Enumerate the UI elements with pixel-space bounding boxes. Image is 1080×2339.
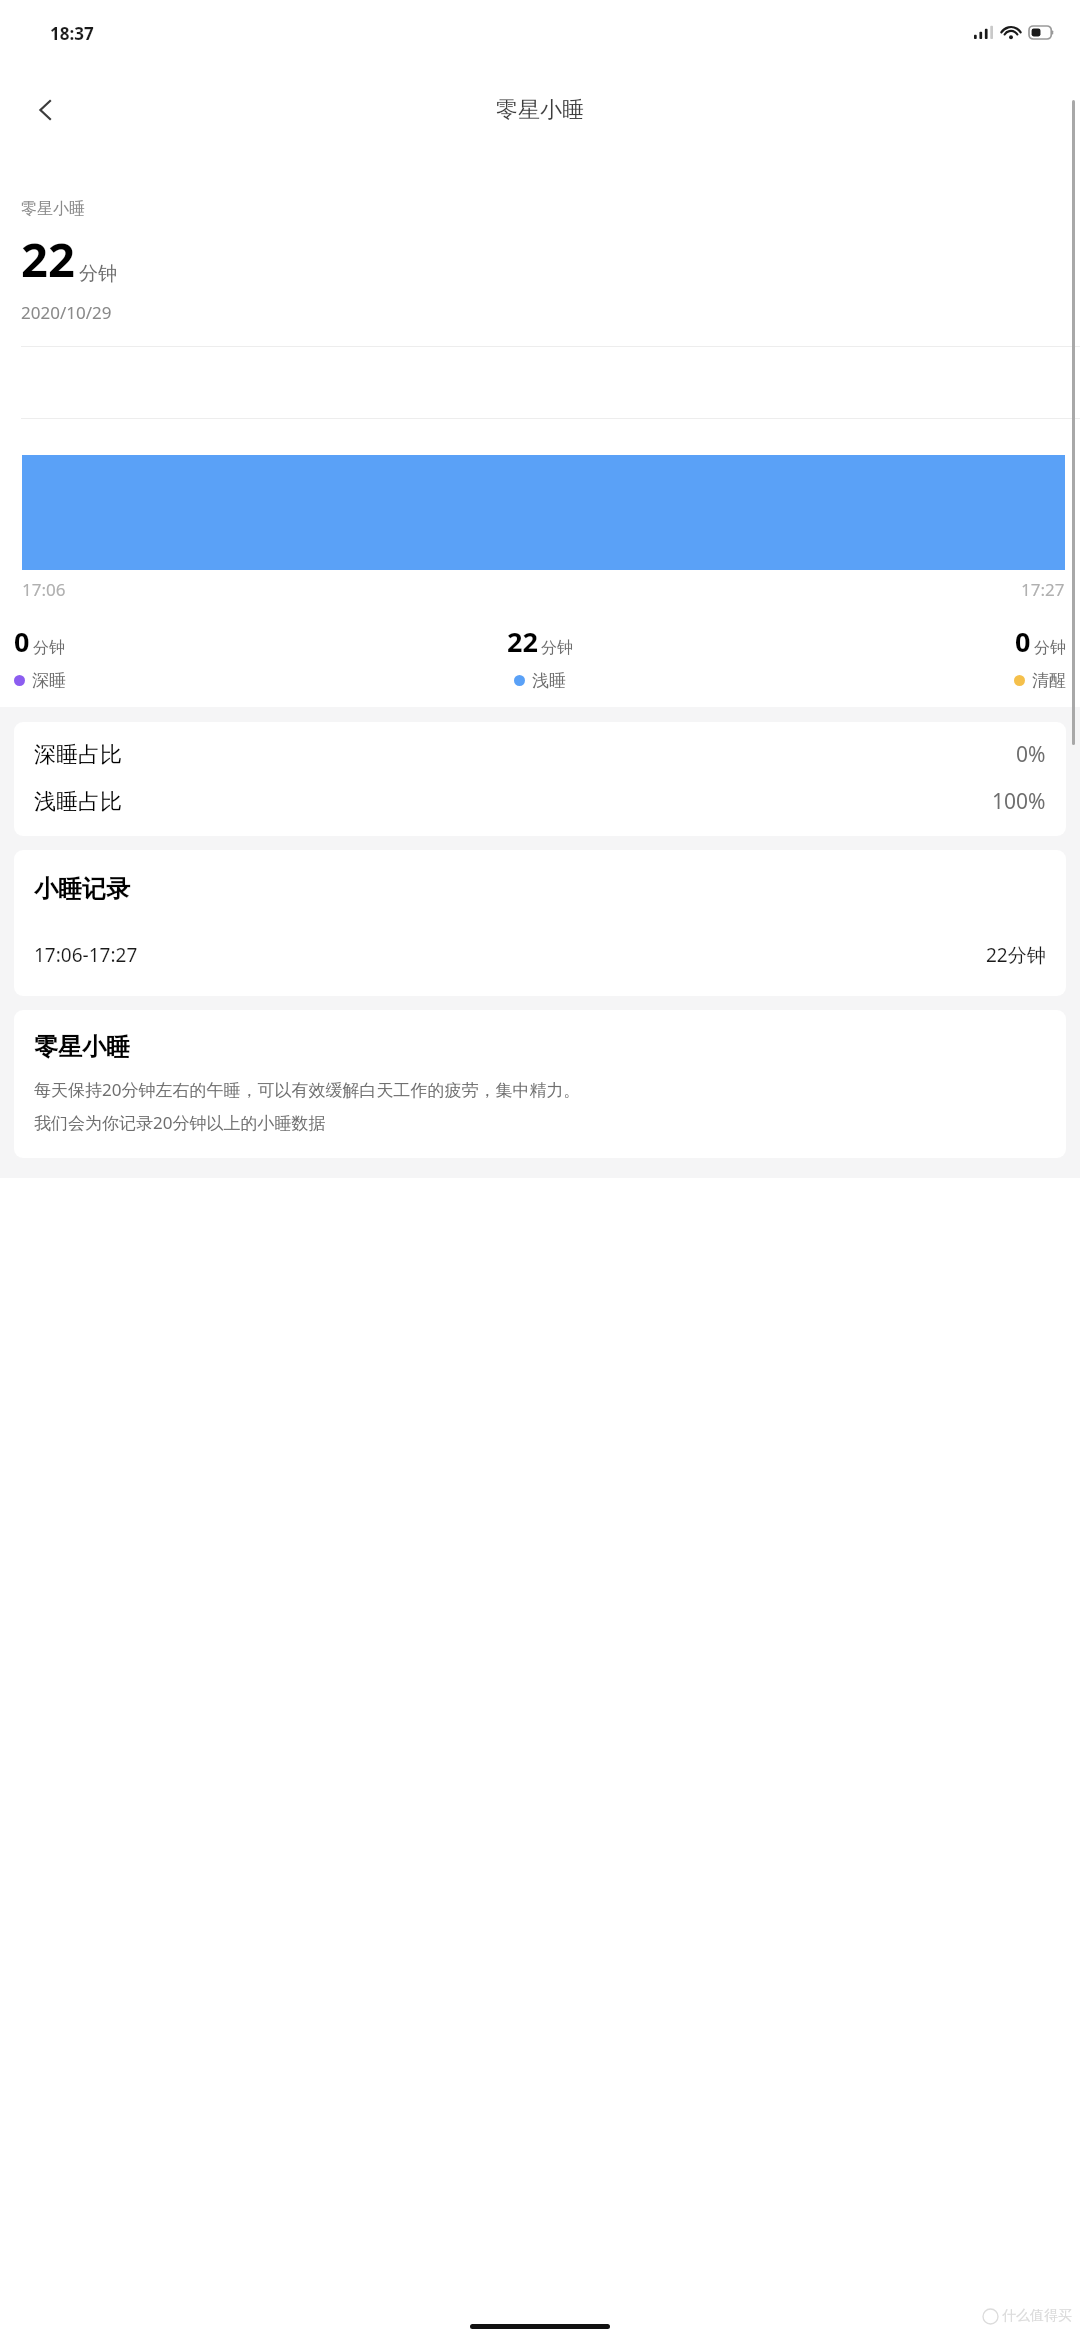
button[interactable]: 小睡记录: [14, 850, 1066, 996]
button[interactable]: 浅睡占比: [34, 787, 1046, 816]
staticText: 22分钟: [986, 942, 1046, 968]
staticText: 17:27: [1021, 578, 1065, 601]
staticText: 分钟: [1034, 638, 1066, 658]
staticText: 清醒: [1032, 670, 1066, 691]
staticText: 零星小睡: [496, 96, 584, 124]
staticText: 浅睡占比: [34, 788, 122, 816]
staticText: 深睡: [32, 670, 66, 691]
staticText: 分钟: [79, 262, 117, 286]
staticText: 零星小睡: [34, 1032, 130, 1062]
staticText: 深睡占比: [34, 741, 122, 769]
button[interactable]: 深睡占比: [34, 740, 1046, 769]
staticText: 17:06-17:27: [34, 942, 138, 968]
staticText: 2020/10/29: [21, 301, 112, 324]
staticText: 0: [1015, 623, 1031, 660]
staticText: 0: [14, 623, 30, 660]
staticText: 我们会为你记录20分钟以上的小睡数据: [34, 1111, 326, 1134]
staticText: 100%: [992, 787, 1046, 816]
button[interactable]: Back: [18, 82, 74, 138]
staticText: 分钟: [541, 638, 573, 658]
staticText: 18:37: [50, 22, 94, 45]
staticText: 17:06: [22, 578, 66, 601]
staticText: 22: [21, 227, 75, 291]
staticText: 小睡记录: [34, 874, 130, 904]
staticText: 0%: [1016, 740, 1046, 769]
staticText: 零星小睡: [21, 199, 85, 219]
staticText: 每天保持20分钟左右的午睡，可以有效缓解白天工作的疲劳，集中精力。: [34, 1078, 581, 1101]
staticText: 什么值得买: [1002, 2307, 1072, 2325]
staticText: 浅睡: [532, 670, 566, 691]
staticText: 分钟: [33, 638, 65, 658]
staticText: 22: [507, 623, 538, 660]
